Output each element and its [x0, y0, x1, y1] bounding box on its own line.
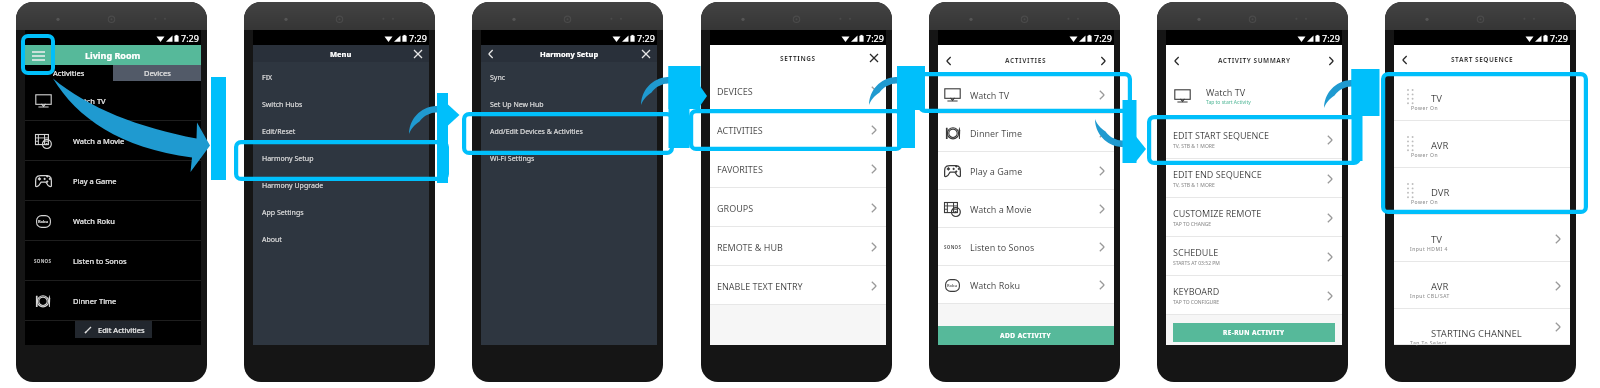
button[interactable]: Close [639, 47, 653, 61]
button[interactable]: DVR [1394, 168, 1570, 215]
button[interactable]: FAVORITES [710, 149, 886, 188]
button[interactable]: STARTING CHANNEL [1394, 309, 1570, 345]
button[interactable]: Menu [25, 45, 51, 65]
staticText: Dinner Time [73, 296, 117, 306]
staticText: Harmony Setup [262, 154, 314, 164]
button[interactable]: Watch TV [25, 81, 201, 121]
button[interactable]: SCHEDULE [1166, 237, 1342, 276]
button[interactable]: Edit/Reset [253, 118, 429, 145]
staticText: About [262, 235, 282, 245]
button[interactable]: Watch a Movie [25, 121, 201, 161]
button[interactable]: REMOTE & HUB [710, 227, 886, 266]
staticText: Tap To Select [1410, 340, 1447, 347]
button[interactable]: Watch a Movie [938, 190, 1114, 228]
button[interactable]: Switch Hubs [253, 91, 429, 118]
button[interactable]: RE-RUN ACTIVITY [1173, 323, 1335, 342]
button[interactable]: Roku [938, 266, 1114, 304]
button[interactable]: SONOS [938, 228, 1114, 266]
staticText: TAP TO CHANGE [1173, 221, 1212, 228]
button[interactable]: ENABLE TEXT ENTRY [710, 266, 886, 305]
button[interactable]: About [253, 226, 429, 253]
staticText: Roku [38, 219, 49, 224]
staticText: Input CBL/SAT [1410, 293, 1450, 300]
button[interactable]: Close [867, 51, 881, 65]
staticText: ACTIVITIES [717, 124, 763, 136]
staticText: RE-RUN ACTIVITY [1223, 328, 1285, 337]
staticText: App Settings [262, 208, 304, 218]
staticText: Dinner Time [970, 127, 1022, 139]
staticText: GROUPS [717, 202, 754, 214]
button[interactable]: ACTIVITIES [710, 110, 886, 149]
button[interactable]: CUSTOMIZE REMOTE [1166, 198, 1342, 237]
button[interactable]: Forward [1324, 54, 1338, 68]
button[interactable]: Dinner Time [938, 114, 1114, 152]
staticText: FIX [262, 73, 273, 83]
button[interactable]: Roku [25, 201, 201, 241]
button[interactable]: DEVICES [710, 71, 886, 110]
staticText: Watch TV [1206, 86, 1246, 98]
button[interactable]: Close [411, 47, 425, 61]
staticText: Harmony Upgrade [262, 181, 324, 191]
staticText: AVR [1431, 280, 1449, 293]
button[interactable]: Dinner Time [25, 281, 201, 321]
button[interactable]: AVR [1394, 121, 1570, 168]
staticText: Edit Activities [98, 325, 145, 335]
button[interactable]: Watch TV [938, 76, 1114, 114]
button[interactable]: EDIT END SEQUENCE [1166, 159, 1342, 198]
button[interactable]: Edit Activities [75, 321, 152, 338]
staticText: DVR [1431, 186, 1450, 199]
staticText: Sync [490, 73, 506, 83]
staticText: 7:29 [637, 32, 655, 44]
staticText: Add/Edit Devices & Activities [490, 127, 583, 137]
button[interactable]: Harmony Upgrade [253, 172, 429, 199]
button[interactable]: Sync [481, 64, 657, 91]
staticText: Power On [1411, 105, 1439, 112]
staticText: Watch TV [970, 89, 1010, 101]
button[interactable]: Wi-Fi Settings [481, 145, 657, 172]
button[interactable]: EDIT START SEQUENCE [1166, 120, 1342, 159]
button[interactable]: Play a Game [25, 161, 201, 201]
button[interactable]: TV [1394, 74, 1570, 121]
staticText: STARTS AT 03:52 PM [1173, 260, 1220, 267]
staticText: EDIT END SEQUENCE [1173, 168, 1262, 180]
button[interactable]: App Settings [253, 199, 429, 226]
staticText: Watch a Movie [73, 136, 125, 146]
button[interactable]: TV [1394, 215, 1570, 262]
button[interactable]: Forward [1096, 54, 1110, 68]
staticText: SONOS [944, 244, 962, 250]
button[interactable]: Back [942, 54, 956, 68]
button[interactable]: Back [484, 47, 498, 61]
staticText: TV [1431, 233, 1442, 246]
button[interactable]: Activities [25, 65, 113, 81]
button[interactable]: Play a Game [938, 152, 1114, 190]
staticText: 7:29 [866, 32, 884, 44]
staticText: Listen to Sonos [73, 256, 127, 266]
button[interactable]: Watch TV [1166, 76, 1342, 115]
staticText: Tap to start Activity [1206, 99, 1251, 106]
button[interactable]: FIX [253, 64, 429, 91]
button[interactable]: Back [1170, 54, 1184, 68]
button[interactable]: AVR [1394, 262, 1570, 309]
button[interactable]: Set Up New Hub [481, 91, 657, 118]
button[interactable]: ADD ACTIVITY [938, 326, 1114, 345]
button[interactable]: Devices [113, 65, 201, 81]
staticText: FAVORITES [717, 163, 763, 175]
staticText: Living Room [85, 49, 141, 61]
button[interactable]: SONOS [25, 241, 201, 281]
button[interactable]: GROUPS [710, 188, 886, 227]
button[interactable]: KEYBOARD [1166, 276, 1342, 315]
staticText: Roku [947, 283, 958, 288]
button[interactable]: Back [1398, 53, 1412, 67]
staticText: 7:29 [409, 32, 427, 44]
button[interactable]: Harmony Setup [253, 145, 429, 172]
staticText: Harmony Setup [540, 49, 599, 59]
staticText: START SEQUENCE [1451, 55, 1514, 64]
staticText: Watch a Movie [970, 203, 1032, 215]
staticText: TV [1431, 92, 1442, 105]
staticText: TV, STB & 1 MORE [1173, 143, 1215, 150]
staticText: Play a Game [970, 165, 1023, 177]
button[interactable]: Add/Edit Devices & Activities [481, 118, 657, 145]
staticText: SETTINGS [780, 54, 816, 63]
staticText: Watch Roku [73, 216, 115, 226]
staticText: AVR [1431, 139, 1449, 152]
